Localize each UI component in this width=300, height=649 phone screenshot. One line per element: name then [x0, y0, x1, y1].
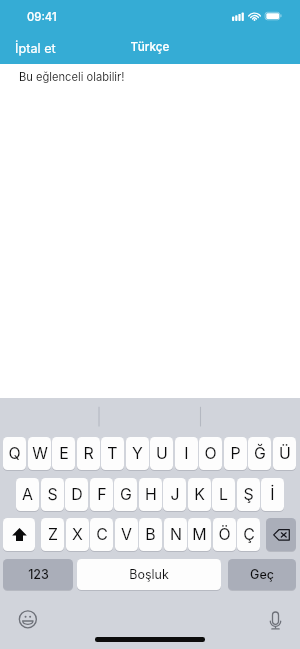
staticText: Türkçe [0, 40, 300, 54]
staticText: F [97, 485, 107, 504]
staticText: G [120, 485, 132, 504]
button[interactable]: H [139, 478, 162, 511]
staticText: O [204, 444, 217, 463]
button[interactable]: Ö [213, 518, 236, 551]
button[interactable]: 123 [3, 559, 73, 590]
staticText: N [170, 525, 182, 544]
staticText: T [107, 444, 118, 463]
button[interactable]: Z [41, 518, 64, 551]
staticText: Geç [250, 567, 274, 582]
staticText: M [192, 525, 207, 544]
button[interactable]: F [90, 478, 113, 511]
staticText: L [219, 485, 228, 504]
button[interactable]: I [175, 437, 198, 470]
button[interactable]: W [28, 437, 51, 470]
staticText: 09:41 [27, 10, 57, 24]
button[interactable]: G [114, 478, 137, 511]
staticText: Ğ [254, 444, 266, 463]
staticText: Bu eğlenceli olabilir! [19, 70, 125, 83]
button[interactable]: J [163, 478, 186, 511]
button[interactable]: Backspace [266, 518, 296, 551]
button[interactable]: O [199, 437, 222, 470]
button[interactable]: İptal et [15, 41, 56, 56]
button[interactable]: Ğ [248, 437, 271, 470]
staticText: B [145, 525, 156, 544]
button[interactable]: Emoji keyboard [18, 609, 38, 629]
button[interactable]: Shift [3, 518, 35, 551]
staticText: R [83, 444, 94, 463]
button[interactable]: R [77, 437, 100, 470]
button[interactable]: A [16, 478, 39, 511]
staticText: Y [132, 444, 143, 463]
staticText: Ü [279, 444, 291, 463]
staticText: J [170, 485, 180, 504]
staticText: S [47, 485, 58, 504]
button[interactable]: Dictation [268, 610, 288, 630]
staticText: Boşluk [129, 567, 169, 582]
staticText: H [145, 485, 157, 504]
staticText: C [96, 525, 108, 544]
staticText: D [71, 485, 83, 504]
button[interactable]: P [224, 437, 247, 470]
button[interactable]: D [65, 478, 88, 511]
button[interactable]: E [52, 437, 75, 470]
button[interactable]: X [66, 518, 89, 551]
button[interactable]: S [41, 478, 64, 511]
button[interactable]: Boşluk [77, 559, 221, 590]
staticText: Ş [243, 485, 254, 504]
button[interactable]: T [101, 437, 124, 470]
button[interactable]: Ş [237, 478, 260, 511]
staticText: I [184, 444, 189, 463]
button[interactable]: Q [3, 437, 26, 470]
staticText: U [156, 444, 168, 463]
button[interactable]: Geç [228, 559, 296, 590]
button[interactable]: N [164, 518, 187, 551]
staticText: İ [270, 485, 275, 504]
button[interactable]: Ç [237, 518, 260, 551]
staticText: E [59, 444, 69, 463]
staticText: 123 [28, 567, 49, 582]
button[interactable]: C [90, 518, 113, 551]
staticText: Q [8, 444, 21, 463]
button[interactable]: Ü [273, 437, 296, 470]
button[interactable]: Y [126, 437, 149, 470]
button[interactable]: K [188, 478, 211, 511]
staticText: K [194, 485, 205, 504]
button[interactable]: U [150, 437, 173, 470]
button[interactable]: V [115, 518, 138, 551]
staticText: X [72, 525, 83, 544]
button[interactable]: M [188, 518, 211, 551]
button[interactable]: L [212, 478, 235, 511]
staticText: A [22, 485, 33, 504]
staticText: V [121, 525, 132, 544]
staticText: Ç [243, 525, 255, 544]
staticText: Z [48, 525, 58, 544]
staticText: Ö [218, 525, 231, 544]
staticText: P [230, 444, 241, 463]
staticText: W [32, 444, 48, 463]
button[interactable]: İ [261, 478, 284, 511]
staticText: İptal et [15, 41, 56, 56]
button[interactable]: B [139, 518, 162, 551]
